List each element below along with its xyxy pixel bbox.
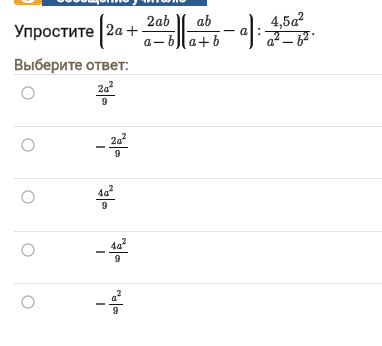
staticText: − bbox=[153, 29, 165, 50]
staticText: 9 bbox=[115, 145, 121, 160]
staticText: 2a bbox=[106, 17, 123, 40]
staticText: 2 bbox=[109, 78, 113, 89]
staticText: − bbox=[282, 29, 294, 50]
button[interactable]: 4a bbox=[0, 231, 382, 283]
staticText: a bbox=[188, 29, 196, 50]
staticText: 4a bbox=[111, 237, 122, 252]
staticText: 9 bbox=[115, 145, 121, 160]
staticText: 2 bbox=[122, 235, 126, 246]
staticText: + bbox=[198, 29, 210, 50]
staticText: 4,5a bbox=[271, 9, 298, 30]
button[interactable]: 4a bbox=[0, 178, 382, 231]
staticText: ab bbox=[196, 9, 211, 30]
staticText: 9 bbox=[115, 250, 121, 265]
staticText: − bbox=[223, 17, 236, 40]
staticText: Выберите ответ: bbox=[14, 56, 129, 73]
button[interactable]: a bbox=[0, 283, 382, 346]
staticText: Выберите ответ: bbox=[14, 56, 129, 73]
staticText: b bbox=[296, 29, 303, 50]
staticText: 2 bbox=[274, 27, 280, 43]
staticText: − bbox=[153, 29, 165, 50]
staticText: 2 bbox=[117, 287, 121, 298]
staticText: Сообщение учителю bbox=[56, 0, 187, 5]
staticText: b bbox=[167, 29, 174, 50]
staticText: 9 bbox=[102, 197, 108, 212]
staticText: + bbox=[198, 29, 210, 50]
staticText: b bbox=[167, 29, 174, 50]
staticText: 2a bbox=[111, 132, 122, 147]
staticText: 4,5a bbox=[271, 9, 298, 30]
staticText: 2ab bbox=[147, 9, 170, 30]
staticText: 4a bbox=[98, 184, 109, 199]
staticText: a bbox=[239, 17, 248, 40]
staticText: 4a bbox=[111, 237, 122, 252]
staticText: 2 bbox=[122, 235, 126, 246]
staticText: a bbox=[143, 29, 151, 50]
staticText: : bbox=[257, 17, 262, 40]
staticText: 2 bbox=[109, 182, 113, 193]
staticText: a bbox=[111, 289, 117, 304]
staticText: + bbox=[126, 17, 139, 40]
staticText: a bbox=[266, 29, 274, 50]
staticText: 2 bbox=[122, 130, 126, 141]
staticText: 9 bbox=[102, 93, 108, 108]
staticText: + bbox=[126, 17, 139, 40]
staticText: 2 bbox=[117, 287, 121, 298]
staticText: − bbox=[223, 17, 236, 40]
staticText: 2ab bbox=[147, 9, 170, 30]
staticText: 4a bbox=[98, 184, 109, 199]
staticText: 9 bbox=[115, 250, 121, 265]
staticText: 9 bbox=[113, 302, 119, 317]
staticText: 9 bbox=[102, 197, 108, 212]
staticText: b bbox=[296, 29, 303, 50]
staticText: : bbox=[257, 17, 262, 40]
staticText: . bbox=[311, 17, 316, 40]
button[interactable]: 2a bbox=[0, 126, 382, 178]
staticText: 2 bbox=[303, 27, 309, 43]
staticText: 2 bbox=[109, 78, 113, 89]
staticText: 2 bbox=[298, 7, 304, 23]
staticText: 2a bbox=[98, 80, 109, 95]
staticText: a bbox=[266, 29, 274, 50]
staticText: 2a bbox=[111, 132, 122, 147]
button[interactable]: 2a bbox=[0, 74, 382, 126]
staticText: Упростите bbox=[14, 22, 94, 41]
button[interactable]: Сообщение учителю bbox=[42, 0, 207, 6]
staticText: 2 bbox=[109, 182, 113, 193]
staticText: Упростите bbox=[14, 22, 94, 41]
staticText: 2 bbox=[303, 27, 309, 43]
staticText: − bbox=[282, 29, 294, 50]
staticText: a bbox=[239, 17, 248, 40]
staticText: 2a bbox=[106, 17, 123, 40]
staticText: a bbox=[111, 289, 117, 304]
staticText: 2 bbox=[298, 7, 304, 23]
staticText: b bbox=[212, 29, 219, 50]
button[interactable]: Профиль bbox=[14, 0, 42, 5]
staticText: a bbox=[143, 29, 151, 50]
staticText: 2 bbox=[122, 130, 126, 141]
staticText: 2a bbox=[98, 80, 109, 95]
staticText: Сообщение учителю bbox=[56, 0, 187, 5]
staticText: . bbox=[311, 17, 316, 40]
staticText: b bbox=[212, 29, 219, 50]
staticText: 9 bbox=[102, 93, 108, 108]
staticText: a bbox=[188, 29, 196, 50]
staticText: 9 bbox=[113, 302, 119, 317]
staticText: 2 bbox=[274, 27, 280, 43]
staticText: ab bbox=[196, 9, 211, 30]
